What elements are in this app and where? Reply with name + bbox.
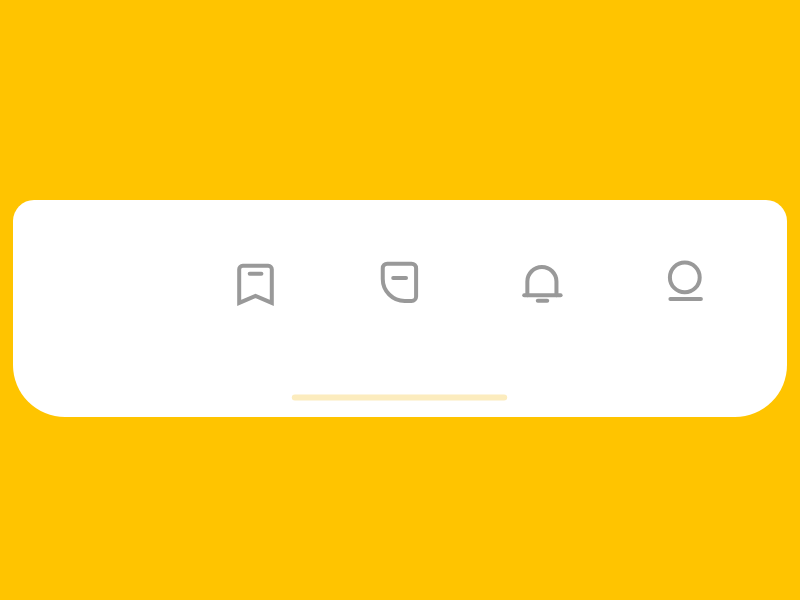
button[interactable]: Notifications xyxy=(518,252,566,308)
button[interactable]: Bookmarks xyxy=(232,252,280,308)
button[interactable]: Messages xyxy=(375,252,423,308)
button[interactable]: Profile xyxy=(661,252,709,308)
